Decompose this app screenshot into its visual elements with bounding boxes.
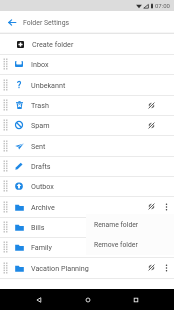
button[interactable]: Trash [0, 95, 174, 115]
button[interactable]: Sync disabled [144, 258, 158, 277]
button[interactable]: Create folder [0, 34, 174, 54]
staticText: Archive [31, 203, 55, 211]
staticText: Create folder [32, 40, 74, 48]
button[interactable]: More options [158, 258, 174, 277]
button[interactable]: Inbox [0, 54, 174, 74]
button[interactable]: Vacation Planning [0, 257, 174, 278]
staticText: Family [31, 243, 52, 251]
staticText: Drafts [31, 162, 51, 170]
button[interactable]: Recent apps [125, 289, 146, 310]
button[interactable]: Bills [0, 217, 174, 237]
button[interactable]: Back [28, 289, 49, 310]
staticText: ? [17, 80, 22, 90]
staticText: Unbekannt [31, 81, 66, 89]
staticText: Inbox [31, 60, 49, 68]
staticText: Folder Settings [23, 19, 70, 27]
button[interactable]: Drafts [0, 156, 174, 176]
button[interactable]: ? [0, 74, 174, 95]
button[interactable]: Home [77, 289, 98, 310]
button[interactable]: More options [158, 197, 174, 216]
staticText: 07:00 [155, 2, 170, 9]
staticText: Remove folder [94, 241, 138, 249]
staticText: Outbox [31, 182, 54, 190]
staticText: Sent [31, 142, 46, 150]
button[interactable]: Remove folder [86, 235, 174, 255]
button[interactable]: Rename folder [86, 214, 174, 235]
button[interactable]: Back [0, 11, 23, 34]
staticText: Vacation Planning [31, 264, 89, 272]
staticText: Bills [31, 223, 45, 231]
button[interactable]: Outbox [0, 176, 174, 196]
staticText: Rename folder [94, 221, 139, 229]
button[interactable]: Sync disabled [144, 116, 158, 135]
staticText: Trash [31, 101, 49, 109]
button[interactable]: Sync disabled [144, 197, 158, 216]
staticText: Spam [31, 121, 50, 129]
button[interactable]: Spam [0, 115, 174, 135]
button[interactable]: Archive [0, 196, 174, 217]
button[interactable]: Family [0, 237, 174, 257]
button[interactable]: Sync disabled [144, 96, 158, 115]
button[interactable]: Sent [0, 135, 174, 156]
